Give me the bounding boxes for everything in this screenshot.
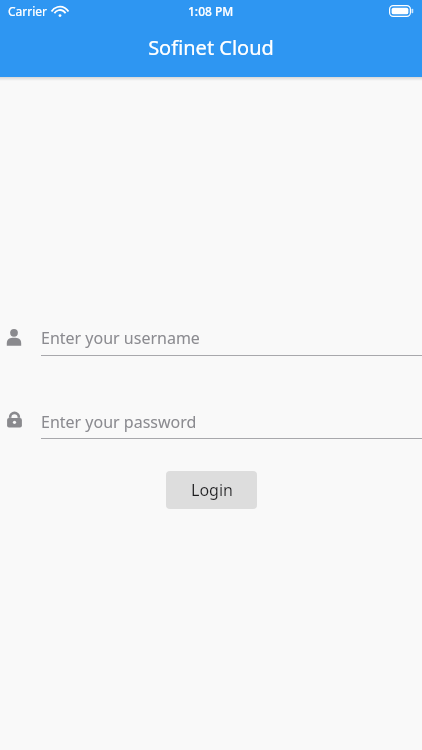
staticText: Enter your password [41,411,197,433]
staticText: Enter your username [41,327,200,349]
other: Password [5,410,24,429]
button[interactable]: Username [0,324,422,376]
staticText: Sofinet Cloud [148,34,274,61]
staticText: Carrier [8,3,48,19]
button[interactable]: Login [166,471,257,509]
other: Username [5,328,23,346]
button[interactable]: Password [0,408,422,460]
staticText: 1:08 PM [188,3,234,19]
staticText: Login [191,479,233,501]
